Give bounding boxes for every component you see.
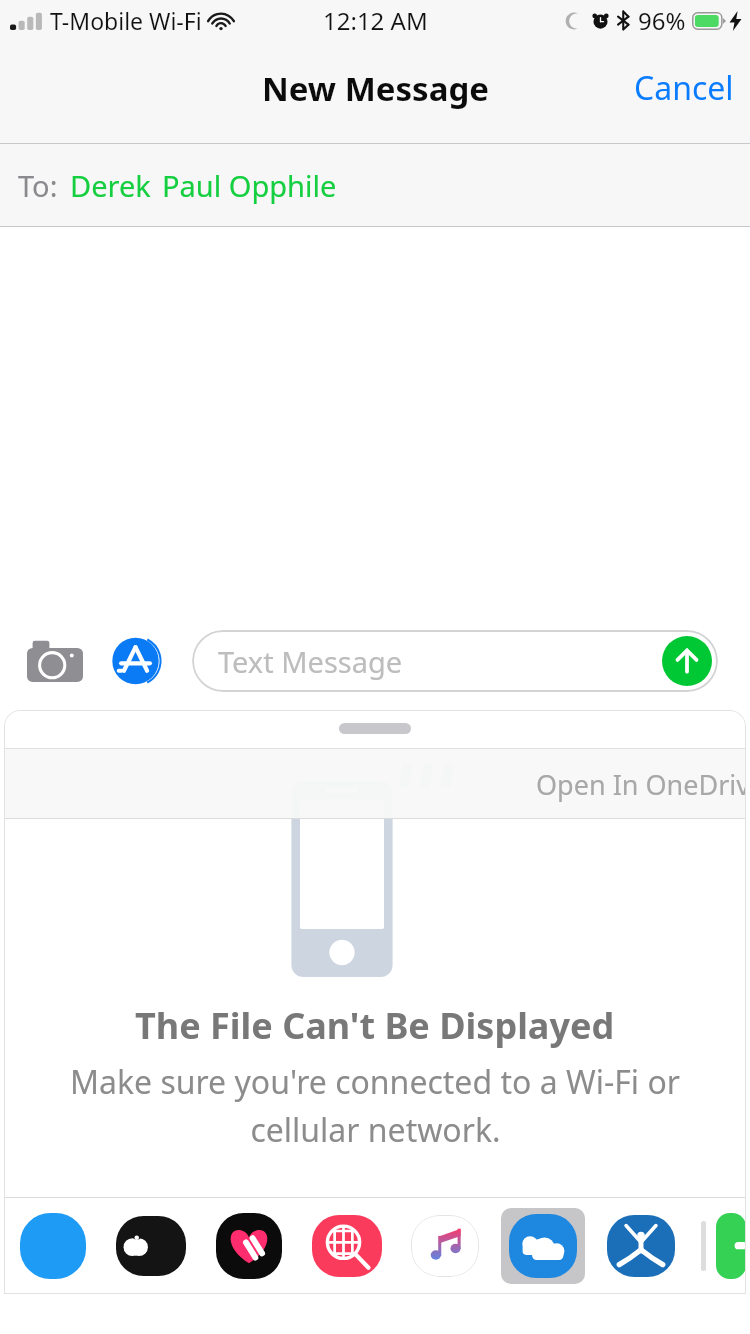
button[interactable]: Camera [24, 630, 86, 692]
staticText: Open In OneDrive [536, 766, 746, 803]
button[interactable]: Apple Pay [102, 1204, 200, 1288]
button[interactable]: Send [662, 636, 712, 686]
button[interactable]: Open In OneDrive [526, 758, 746, 811]
button[interactable]: Music [396, 1204, 494, 1288]
button[interactable]: To: [0, 144, 750, 227]
button[interactable]: More [716, 1204, 746, 1288]
button[interactable]: Images [298, 1204, 396, 1288]
staticText: Derek [70, 166, 151, 205]
staticText: New Message [262, 66, 489, 111]
staticText: T-Mobile Wi-Fi [50, 5, 202, 36]
button[interactable]: Apps [108, 630, 170, 692]
staticText: Text Message [218, 642, 403, 681]
button[interactable]: Workout [592, 1204, 690, 1288]
staticText: To: [18, 166, 58, 205]
button[interactable]: Text Message [192, 630, 718, 692]
staticText: cellular network. [250, 1108, 501, 1152]
button[interactable]: Cancel [618, 56, 750, 120]
staticText: The File Can't Be Displayed [135, 1001, 615, 1050]
staticText: Make sure you're connected to a Wi-Fi or [70, 1060, 680, 1104]
staticText: 12:12 AM [323, 4, 428, 37]
button[interactable]: App [4, 1204, 102, 1288]
staticText: Paul Opphile [162, 166, 337, 205]
button[interactable]: Health [200, 1204, 298, 1288]
staticText: Cancel [634, 66, 734, 110]
staticText: 96% [638, 4, 686, 37]
button[interactable]: OneDrive [494, 1204, 592, 1288]
